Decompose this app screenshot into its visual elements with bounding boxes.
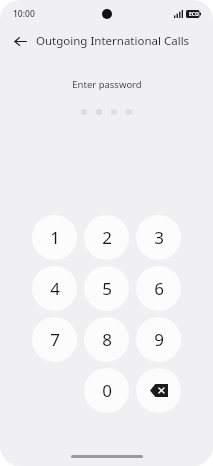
staticText: 2: [102, 226, 112, 249]
button[interactable]: 1: [32, 215, 77, 260]
button[interactable]: 0: [84, 368, 129, 413]
button[interactable]: 3: [136, 215, 181, 260]
staticText: 0: [102, 379, 112, 402]
staticText: ECO: [189, 11, 199, 18]
button[interactable]: 4: [32, 266, 77, 311]
staticText: Outgoing International Calls: [36, 33, 190, 49]
staticText: 10:00: [13, 8, 35, 20]
staticText: 4: [50, 277, 60, 300]
button[interactable]: 8: [84, 317, 129, 362]
staticText: 8: [102, 328, 112, 351]
staticText: 9: [154, 328, 164, 351]
staticText: Enter password: [72, 78, 142, 91]
button[interactable]: 5: [84, 266, 129, 311]
staticText: 7: [50, 328, 60, 351]
staticText: 6: [154, 277, 164, 300]
button[interactable]: 6: [136, 266, 181, 311]
staticText: 3: [154, 226, 164, 249]
staticText: 1: [50, 226, 60, 249]
staticText: 5: [102, 277, 112, 300]
button[interactable]: Back: [8, 30, 32, 52]
button[interactable]: Delete: [136, 368, 181, 413]
button[interactable]: 2: [84, 215, 129, 260]
button[interactable]: 9: [136, 317, 181, 362]
button[interactable]: 7: [32, 317, 77, 362]
